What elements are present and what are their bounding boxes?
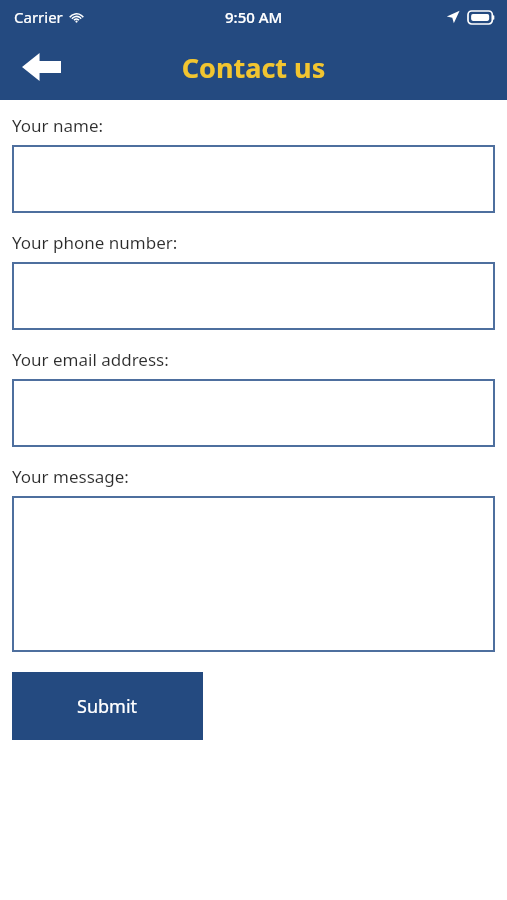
button[interactable]: Your email address input xyxy=(12,379,495,447)
button[interactable]: Submit xyxy=(12,672,203,740)
staticText: Submit xyxy=(77,694,138,719)
staticText: Your phone number: xyxy=(12,231,178,254)
button[interactable]: Your phone number input xyxy=(12,262,495,330)
button[interactable]: Your name input xyxy=(12,145,495,213)
staticText: Carrier xyxy=(14,7,63,27)
staticText: 9:50 AM xyxy=(225,7,283,27)
staticText: Your name: xyxy=(12,114,104,137)
button[interactable]: Back xyxy=(14,45,68,89)
staticText: Contact us xyxy=(0,49,507,86)
staticText: Your email address: xyxy=(12,348,169,371)
button[interactable]: Your message input xyxy=(12,496,495,652)
staticText: Your message: xyxy=(12,465,129,488)
